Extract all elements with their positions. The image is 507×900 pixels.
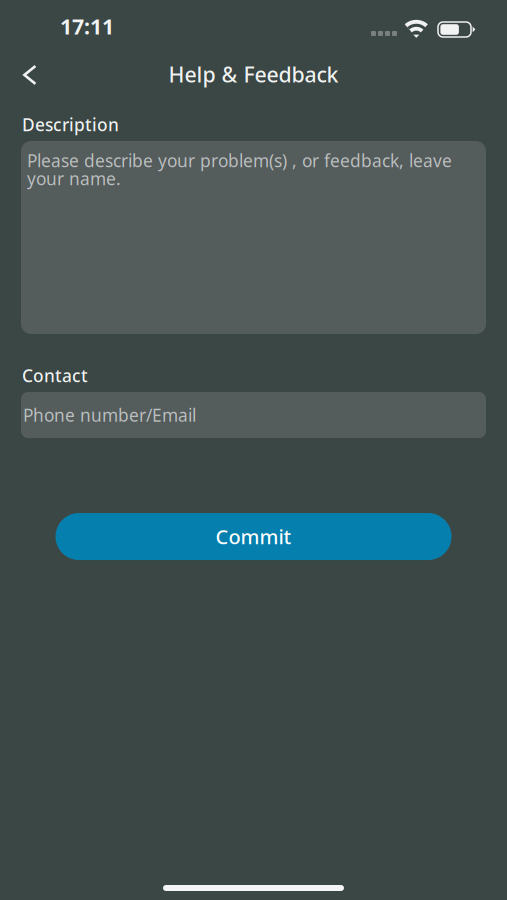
- button[interactable]: Please describe your problem(s) , or fee…: [21, 141, 486, 334]
- staticText: 17:11: [60, 12, 114, 40]
- button[interactable]: Back: [8, 55, 52, 95]
- staticText: Contact: [22, 364, 88, 387]
- staticText: Help & Feedback: [168, 60, 338, 88]
- staticText: Please describe your problem(s) , or fee…: [27, 149, 452, 190]
- staticText: Description: [22, 113, 119, 136]
- staticText: Commit: [215, 523, 291, 550]
- staticText: Phone number/Email: [23, 403, 196, 426]
- button[interactable]: Commit: [55, 513, 451, 560]
- button[interactable]: Phone number/Email: [21, 392, 486, 438]
